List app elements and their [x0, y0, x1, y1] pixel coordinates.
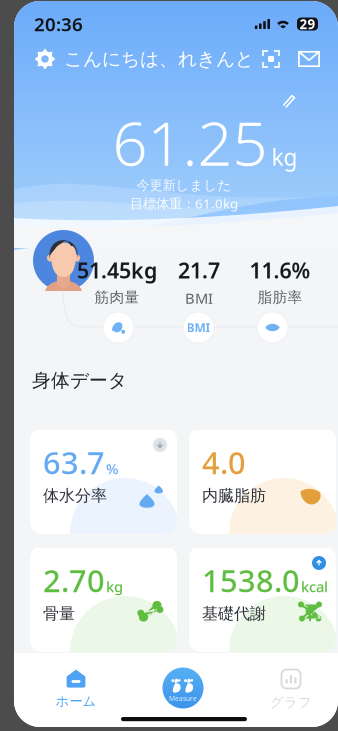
staticText: 筋肉量 [94, 288, 139, 306]
staticText: 29 [299, 15, 315, 33]
staticText: % [106, 459, 118, 478]
staticText: 内臓脂肪 [202, 486, 266, 505]
button[interactable]: 4.0 [189, 428, 336, 534]
staticText: 61.25 [112, 101, 267, 183]
staticText: 51.45kg [77, 256, 157, 284]
staticText: 1538.0 [202, 560, 300, 601]
staticText: 身体データ [32, 369, 127, 392]
staticText: 4.0 [202, 442, 246, 483]
staticText: グラフ [270, 694, 312, 710]
staticText: kg [271, 142, 297, 172]
staticText: 21.7 [178, 256, 220, 284]
staticText: こんにちは、れきんと [64, 47, 254, 70]
button[interactable]: 1538.0 [189, 546, 336, 652]
staticText: 骨量 [43, 604, 75, 623]
staticText: 2.70 [43, 560, 105, 601]
button[interactable]: 2.70 [30, 546, 177, 652]
staticText: ホーム [55, 693, 96, 709]
staticText: kcal [301, 577, 328, 596]
button[interactable]: Edit weight [282, 94, 295, 108]
button[interactable]: Scan code [257, 45, 285, 73]
staticText: 基礎代謝 [202, 604, 266, 623]
staticText: 脂肪率 [257, 288, 302, 306]
button[interactable]: Measure [159, 664, 207, 712]
button[interactable]: Messages [293, 46, 325, 72]
staticText: Measure [169, 694, 197, 703]
staticText: 63.7 [43, 442, 105, 483]
button[interactable]: 63.7 [30, 428, 177, 534]
staticText: 11.6% [249, 256, 310, 284]
staticText: BMI [185, 288, 213, 308]
button[interactable]: グラフ [251, 669, 331, 721]
button[interactable]: Settings [29, 43, 61, 75]
staticText: 20:36 [34, 12, 83, 36]
button[interactable]: ホーム [36, 669, 116, 721]
staticText: 目標体重：61.0kg [130, 194, 238, 212]
staticText: 今更新しました [136, 177, 231, 193]
staticText: kg [106, 577, 123, 596]
staticText: BMI [186, 319, 210, 335]
staticText: 体水分率 [43, 486, 107, 505]
